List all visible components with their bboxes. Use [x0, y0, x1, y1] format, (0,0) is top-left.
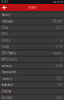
staticText: A17: [56, 26, 62, 29]
button[interactable]: CPU: [0, 30, 64, 36]
button[interactable]: Cores: [0, 36, 64, 43]
staticText: 6: [60, 58, 62, 61]
button[interactable]: Available: [0, 81, 64, 87]
button[interactable]: Clock: [0, 43, 64, 49]
staticText: 256: [56, 77, 62, 80]
staticText: Display: [1, 89, 10, 93]
button[interactable]: Back: [0, 4, 9, 11]
staticText: Model: [1, 13, 10, 17]
staticText: 6: [60, 39, 62, 42]
staticText: Bandwidth: [1, 70, 16, 74]
staticText: 82: [58, 83, 62, 87]
staticText: GPU Family: [1, 51, 15, 55]
staticText: Hardware: [1, 20, 13, 23]
button[interactable]: Capacity: [0, 74, 64, 81]
button[interactable]: Display: [0, 87, 64, 93]
button[interactable]: Hardware: [0, 17, 64, 24]
staticText: 3.78: [55, 45, 62, 49]
button[interactable]: Density: [0, 93, 64, 100]
staticText: Density: [1, 96, 11, 99]
staticText: Capacity: [1, 77, 11, 80]
button[interactable]: Chip: [0, 24, 64, 30]
staticText: 9:41: [1, 0, 8, 4]
staticText: 8 GB: [55, 64, 62, 68]
staticText: 460: [56, 96, 62, 99]
staticText: Available: [1, 83, 13, 87]
staticText: Details: [27, 6, 36, 9]
staticText: Clock: [1, 45, 8, 49]
button[interactable]: GPU Cores: [0, 55, 64, 62]
staticText: Memory: [1, 64, 11, 68]
staticText: GPU Cores: [1, 58, 16, 61]
staticText: CPU: [1, 32, 7, 36]
staticText: Apple: [53, 51, 62, 55]
staticText: Chip: [1, 26, 8, 29]
staticText: Cores: [1, 39, 9, 42]
button[interactable]: Model: [0, 11, 64, 17]
button[interactable]: Bandwidth: [0, 68, 64, 74]
staticText: LTE 95%: [52, 0, 62, 4]
button[interactable]: GPU Family: [0, 49, 64, 55]
button[interactable]: Memory: [0, 62, 64, 68]
staticText: D84AP: [52, 20, 62, 23]
